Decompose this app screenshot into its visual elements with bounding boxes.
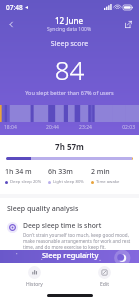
staticText: Edit [100, 281, 109, 288]
staticText: You slept better than 67% of users [0, 89, 139, 96]
staticText: 20:44 [36, 124, 69, 131]
button[interactable]: Deep sleep time is short [0, 221, 139, 250]
staticText: Sleep score [0, 39, 139, 49]
staticText: 2 min [91, 167, 110, 177]
staticText: 02:03 [102, 124, 135, 131]
button[interactable]: Sleep regularity [0, 250, 139, 263]
button[interactable]: Back [3, 16, 19, 32]
staticText: Don't strain yourself too much, keep goo… [23, 232, 132, 250]
staticText: 6h 33m [48, 167, 73, 177]
staticText: 23:24 [69, 124, 102, 131]
staticText: 18:04 [4, 124, 36, 131]
staticText: Sleep regularity [42, 250, 99, 260]
staticText: Time awake [96, 179, 120, 185]
staticText: History [26, 281, 43, 288]
staticText: Compared with the average sleep data in … [16, 262, 124, 263]
button[interactable]: History [0, 263, 69, 290]
button[interactable]: Share [120, 16, 136, 32]
staticText: 1h 34 m [5, 167, 32, 177]
staticText: Light sleep 80% [53, 179, 84, 185]
staticText: 84 [0, 52, 139, 87]
button[interactable]: Edit [69, 263, 139, 290]
staticText: 12 June [55, 15, 84, 26]
staticText: Sleep quality analysis [7, 204, 79, 214]
staticText: 07:48 [6, 3, 23, 12]
staticText: 7h 57m [0, 141, 139, 152]
staticText: Deep sleep 20% [10, 179, 42, 185]
staticText: Deep sleep time is short [23, 221, 102, 230]
staticText: Syncing data 100% [47, 26, 92, 33]
